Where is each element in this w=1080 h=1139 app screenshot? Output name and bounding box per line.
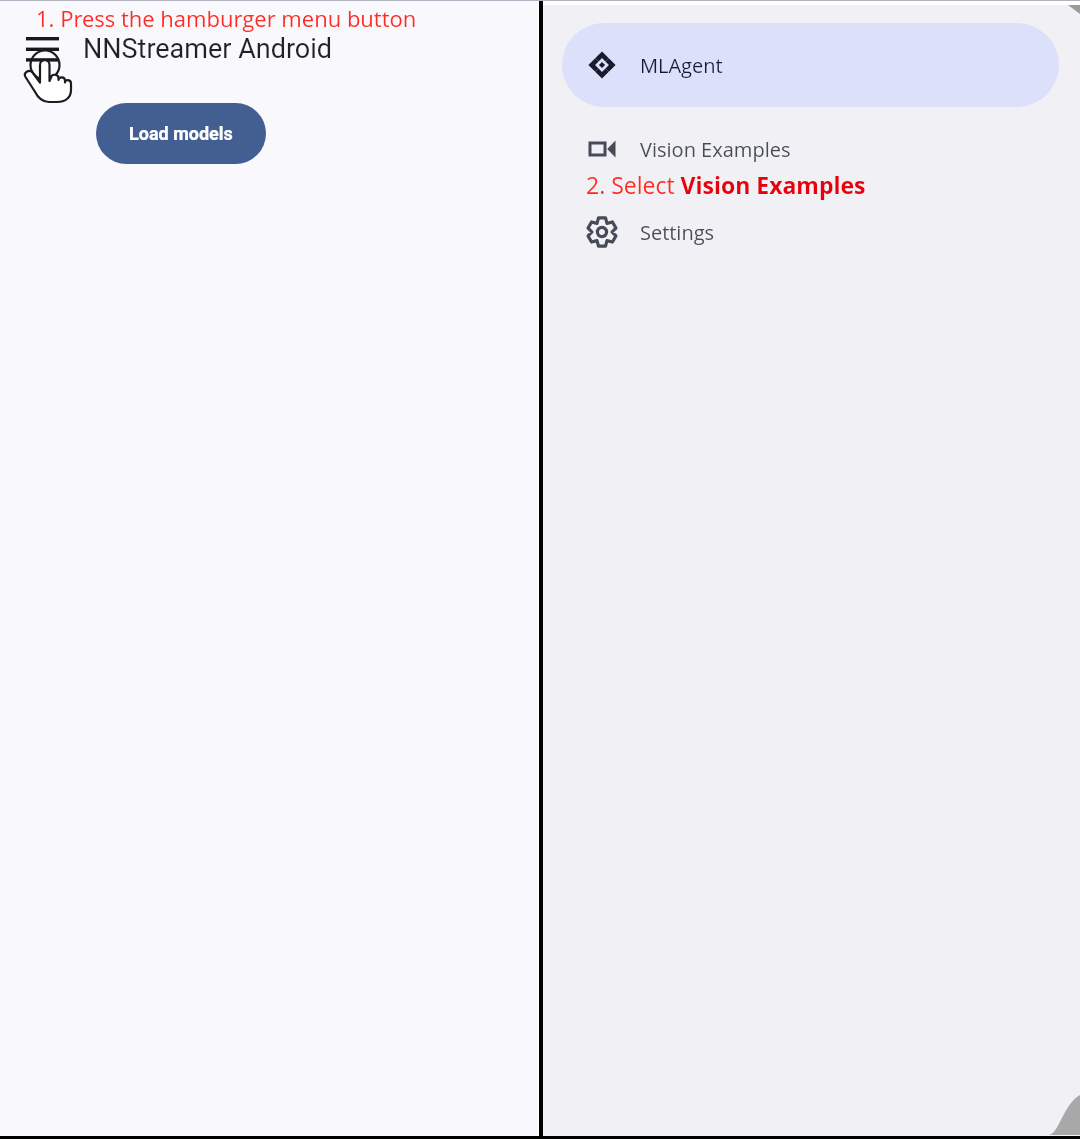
staticText: NNStreamer Android [83, 33, 332, 65]
staticText: Load models [129, 123, 233, 144]
button[interactable]: MLAgent [562, 23, 1059, 107]
staticText: Vision Examples [640, 136, 791, 163]
staticText: 2. Select Vision Examples [586, 169, 866, 200]
button[interactable]: Settings [562, 210, 962, 254]
staticText: 1. Press the hamburger menu button [36, 3, 417, 33]
staticText: MLAgent [640, 52, 723, 79]
button[interactable]: Open navigation drawer [26, 37, 59, 62]
button[interactable]: Load models [96, 103, 266, 164]
staticText: Settings [640, 219, 715, 246]
button[interactable]: Vision Examples [562, 127, 962, 171]
